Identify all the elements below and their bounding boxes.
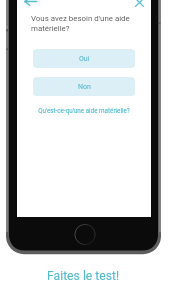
button[interactable]: Oui (33, 49, 135, 68)
button[interactable]: Faites le test! (0, 266, 168, 286)
button[interactable]: Non (33, 77, 135, 96)
button[interactable]: Qu'est-ce-qu'une aide matérielle? (34, 106, 134, 115)
staticText: Oui (79, 55, 90, 63)
staticText: Non (78, 83, 91, 91)
button[interactable]: Back (20, 0, 40, 11)
button[interactable]: Close (129, 0, 149, 12)
staticText: Faites le test! (47, 269, 120, 283)
staticText: Vous avez besoin d'une aide matérielle? (31, 14, 147, 33)
